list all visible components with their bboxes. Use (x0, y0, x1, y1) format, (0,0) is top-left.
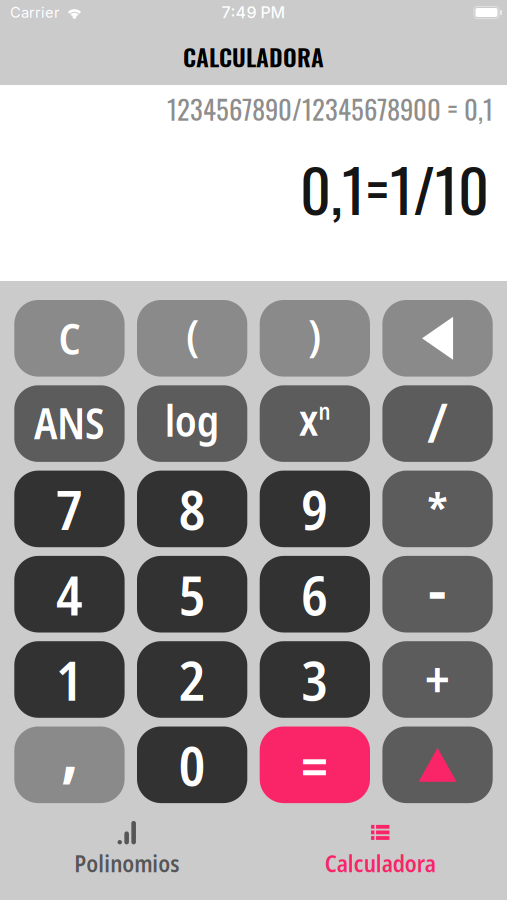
button[interactable]: 5 (137, 556, 247, 632)
staticText: 7:49 PM (221, 3, 285, 22)
button[interactable]: , (14, 726, 125, 803)
staticText: Polinomios (74, 847, 179, 879)
button[interactable]: / (382, 385, 493, 462)
staticText: 9 (301, 472, 328, 546)
staticText: / (427, 386, 448, 458)
button[interactable]: Delete (382, 300, 493, 377)
button[interactable]: Calculadora (253, 820, 507, 879)
staticText: 2 (179, 642, 206, 717)
button[interactable]: 9 (260, 471, 370, 547)
staticText: * (427, 477, 448, 539)
staticText: 8 (179, 472, 206, 546)
staticText: 7 (56, 472, 83, 546)
staticText: 3 (301, 642, 328, 717)
button[interactable]: Polinomios (0, 820, 253, 879)
button[interactable]: + (382, 641, 493, 718)
button[interactable]: C (14, 300, 125, 377)
staticText: n (319, 396, 331, 426)
staticText: 1 (56, 642, 83, 717)
staticText: ) (308, 305, 321, 364)
button[interactable]: log (137, 385, 247, 462)
button[interactable]: 8 (137, 471, 247, 547)
staticText: Carrier (10, 4, 60, 21)
button[interactable]: 4 (14, 556, 125, 632)
staticText: 0,1=1/10 (300, 143, 489, 232)
staticText: 0 (179, 728, 206, 802)
button[interactable]: 6 (260, 556, 370, 632)
button[interactable]: - (382, 556, 493, 632)
button[interactable]: ANS (14, 385, 125, 462)
button[interactable]: 0 (137, 726, 247, 803)
button[interactable]: 1 (14, 641, 125, 718)
staticText: C (58, 309, 80, 367)
button[interactable]: 7 (14, 471, 125, 547)
staticText: 1234567890/12345678900 = 0,1 (167, 89, 493, 128)
staticText: log (165, 391, 220, 449)
button[interactable]: = (260, 726, 370, 803)
staticText: Calculadora (325, 847, 436, 879)
button[interactable]: x (260, 385, 370, 462)
button[interactable]: * (382, 471, 493, 547)
staticText: x (299, 390, 318, 448)
staticText: ( (186, 305, 199, 364)
staticText: = (301, 728, 328, 802)
staticText: 4 (56, 557, 83, 631)
staticText: 6 (301, 557, 328, 631)
button[interactable]: 2 (137, 641, 247, 718)
staticText: 5 (179, 557, 206, 631)
staticText: CALCULADORA (183, 39, 324, 74)
staticText: - (428, 546, 447, 630)
staticText: , (60, 699, 78, 797)
button[interactable]: ( (137, 300, 247, 377)
button[interactable]: ) (260, 300, 370, 377)
button[interactable]: Shift (382, 726, 493, 803)
button[interactable]: 3 (260, 641, 370, 718)
staticText: ANS (34, 394, 105, 452)
staticText: + (425, 644, 450, 713)
